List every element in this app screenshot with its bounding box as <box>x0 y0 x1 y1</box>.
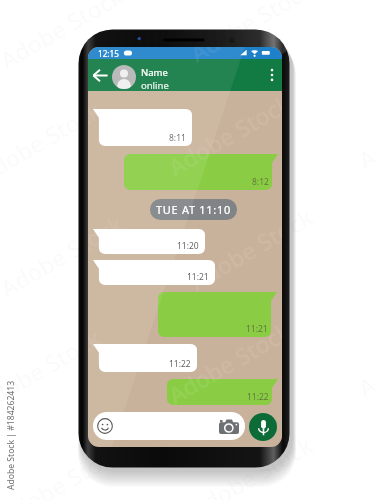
staticText: Adobe Stock <box>162 318 282 406</box>
staticText: Adobe Stock <box>88 439 120 447</box>
staticText: TUE AT 11:10 <box>156 202 231 217</box>
staticText: 12:15 <box>98 48 119 59</box>
button[interactable]: 11:20 <box>93 229 205 254</box>
staticText: 11:21 <box>187 271 209 283</box>
staticText: 11:22 <box>247 391 269 403</box>
staticText: Adobe Stock <box>184 0 310 64</box>
staticText: Adobe Stock <box>184 432 310 500</box>
staticText: Adobe Stock <box>88 325 98 413</box>
staticText: 11:21 <box>246 323 268 335</box>
staticText: Adobe Stock <box>184 204 310 292</box>
staticText: Adobe Stock <box>0 439 120 500</box>
button[interactable]: 11:22 <box>93 344 197 372</box>
button[interactable]: Record voice message <box>249 413 277 441</box>
button[interactable]: 11:22 <box>167 379 278 405</box>
button[interactable]: Emoji <box>96 417 114 435</box>
staticText: Adobe Stock <box>0 325 98 413</box>
button[interactable]: Back <box>89 65 110 85</box>
staticText: Adobe Stock <box>184 204 282 292</box>
staticText: Adobe Stock <box>162 90 282 178</box>
button[interactable]: Emoji <box>93 412 245 440</box>
staticText: 8:12 <box>252 176 269 188</box>
staticText: Adobe Stock <box>162 90 288 178</box>
button[interactable]: Contact photo <box>112 65 136 89</box>
button[interactable]: 8:11 <box>93 109 192 146</box>
staticText: Adobe Stock <box>162 318 288 406</box>
button[interactable]: 8:12 <box>124 154 278 190</box>
staticText: Adobe Stock <box>88 97 98 185</box>
staticText: Adobe Stock <box>88 47 120 71</box>
button[interactable]: 11:21 <box>93 260 215 285</box>
staticText: Adobe Stock <box>184 432 282 447</box>
button[interactable]: TUE AT 11:10 <box>150 199 237 220</box>
button[interactable]: Camera <box>217 416 241 436</box>
button[interactable]: 11:21 <box>158 292 277 337</box>
staticText: Adobe Stock <box>0 0 120 71</box>
staticText: Adobe Stock <box>88 211 120 299</box>
button[interactable]: More options <box>264 62 280 88</box>
staticText: Adobe Stock | #184262413 <box>5 386 17 490</box>
staticText: 11:20 <box>177 240 199 252</box>
staticText: Adobe Stock <box>0 211 120 299</box>
staticText: online <box>141 79 169 92</box>
staticText: Adobe Stock <box>184 47 282 64</box>
staticText: 11:22 <box>169 358 191 370</box>
staticText: 8:11 <box>169 132 186 144</box>
staticText: Name <box>141 66 168 79</box>
staticText: Adobe Stock <box>0 97 98 185</box>
